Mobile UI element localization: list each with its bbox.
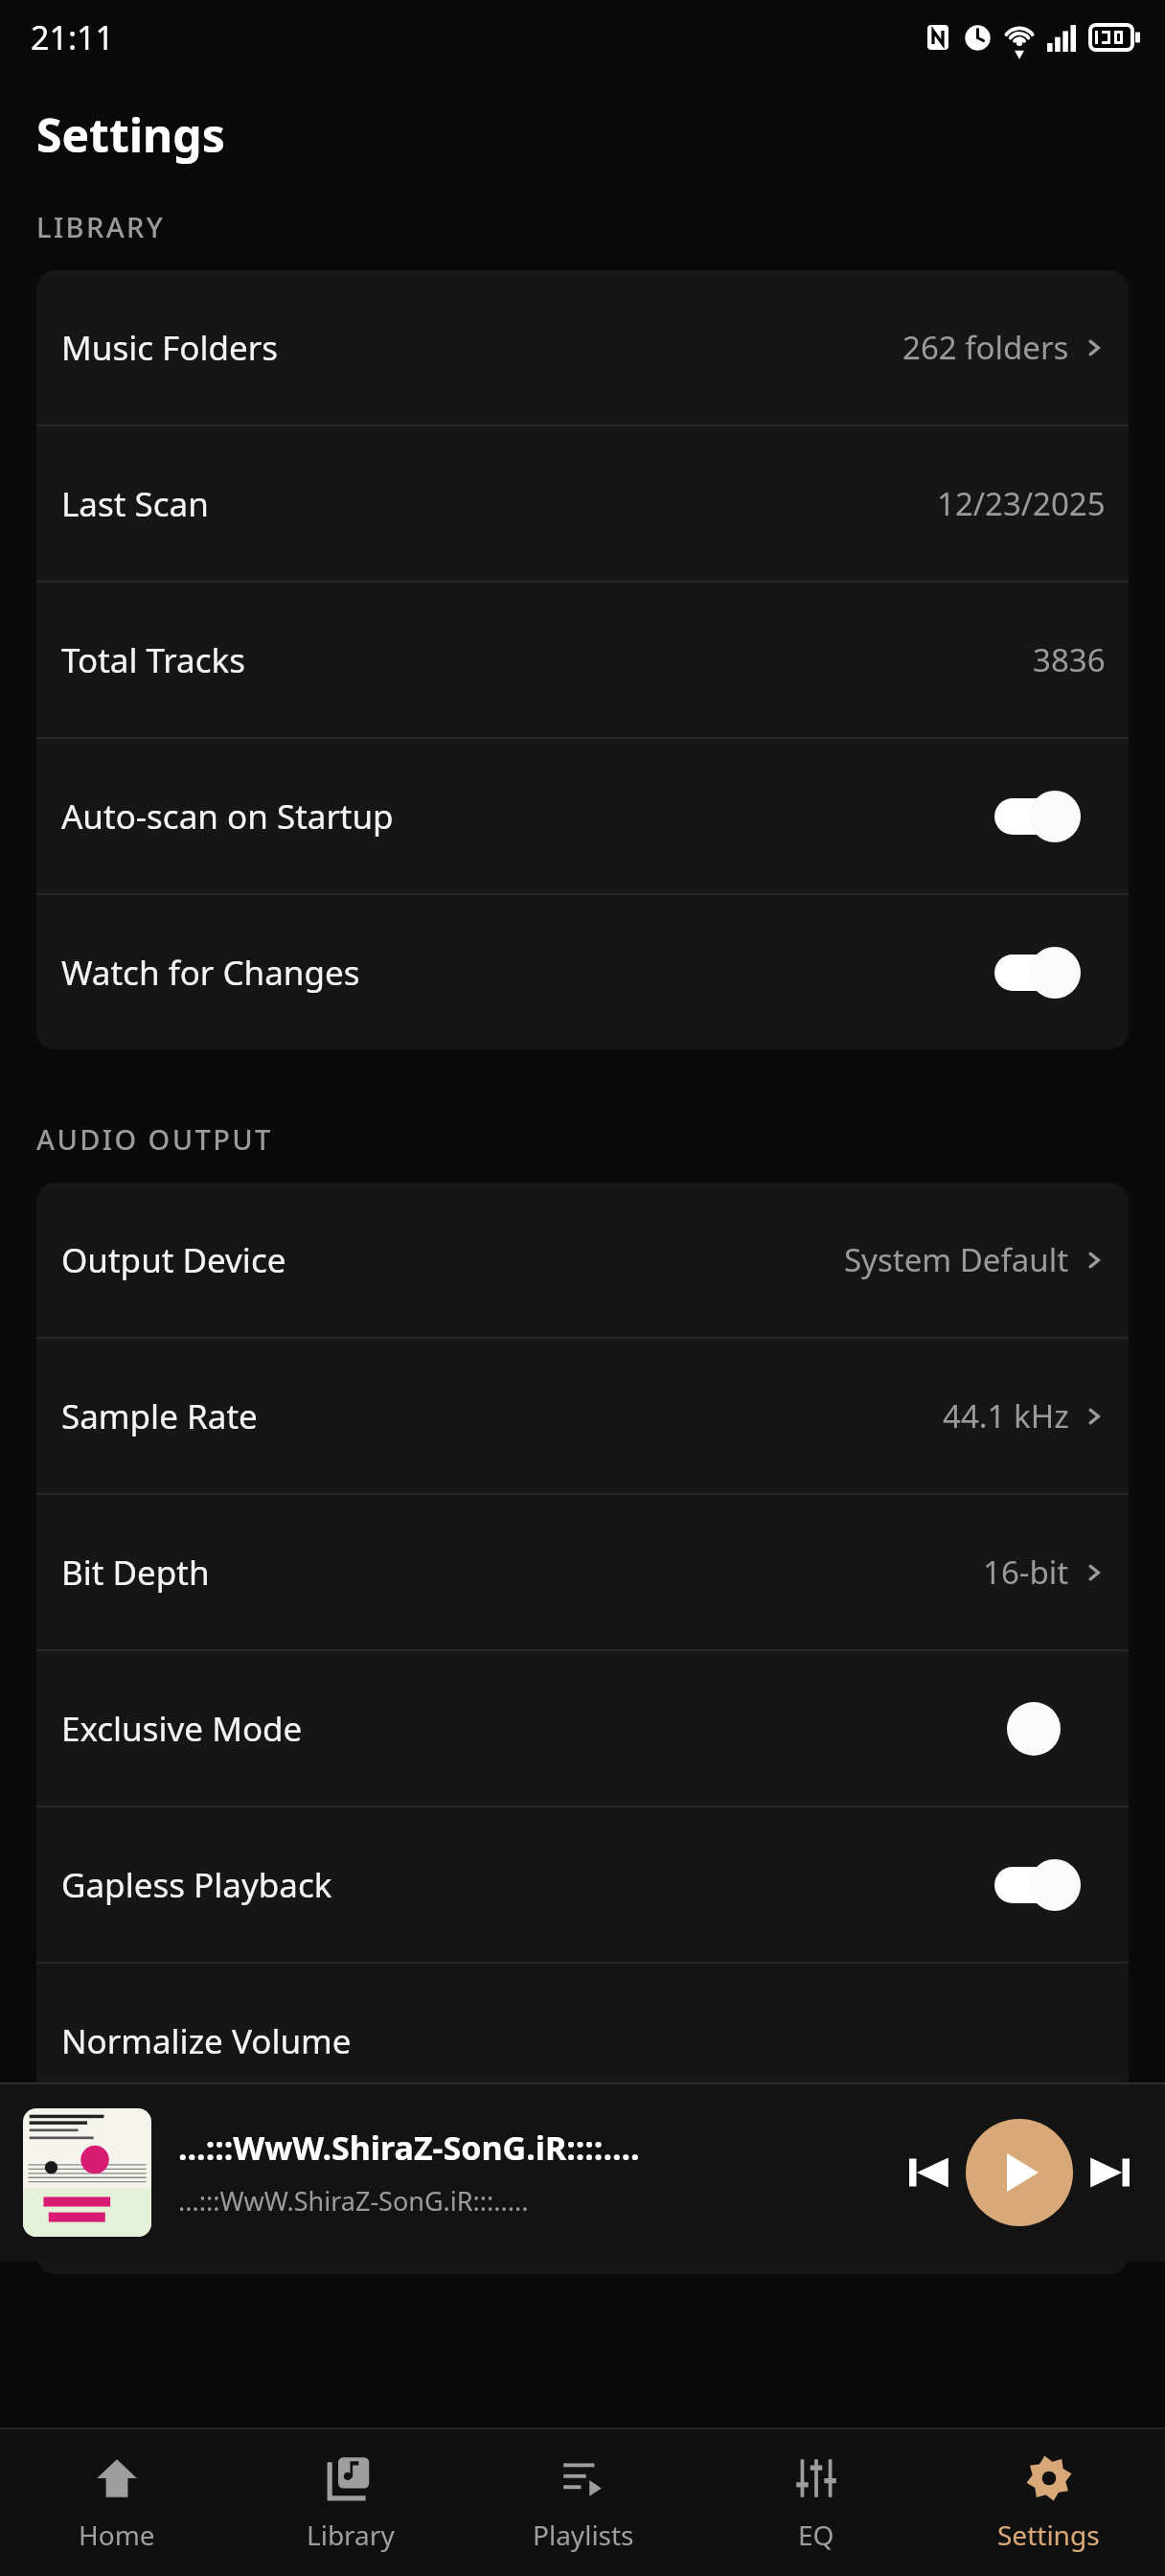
button[interactable]: ReplayGain	[36, 2120, 1129, 2274]
staticText: ...:::WwW.ShiraZ-SonG.iR::::....	[178, 2126, 640, 2170]
staticText: LIBRARY	[36, 208, 166, 245]
staticText: Bit Depth	[61, 1550, 983, 1596]
button[interactable]: Library	[234, 2429, 467, 2576]
button[interactable]: Home	[0, 2429, 234, 2576]
button[interactable]: Last Scan	[36, 426, 1129, 581]
staticText: 44.1 kHz	[943, 1394, 1069, 1437]
button[interactable]: Playlists	[467, 2429, 699, 2576]
staticText: AUDIO OUTPUT	[36, 1120, 273, 1158]
staticText: Playlists	[533, 2517, 634, 2553]
button[interactable]: Previous track	[893, 2136, 966, 2209]
button[interactable]: Auto-scan on Startup	[36, 739, 1129, 893]
staticText: Home	[79, 2517, 155, 2553]
button[interactable]: Bit Depth	[36, 1495, 1129, 1649]
staticText: EQ	[798, 2517, 834, 2553]
staticText: 3836	[1033, 638, 1106, 681]
button[interactable]: Next track	[1073, 2136, 1146, 2209]
staticText: Library	[307, 2517, 395, 2553]
staticText: Auto-scan on Startup	[61, 793, 994, 839]
staticText: Off	[1022, 2175, 1069, 2219]
button[interactable]: Play	[966, 2119, 1073, 2226]
staticText: Last Scan	[61, 481, 937, 527]
button[interactable]: Watch for Changes	[36, 895, 1129, 1049]
button[interactable]: Gapless Playback	[36, 1807, 1129, 1962]
button[interactable]: Settings	[932, 2429, 1165, 2576]
staticText: Music Folders	[61, 325, 902, 371]
staticText: 16-bit	[983, 1551, 1069, 1594]
staticText: Normalize Volume	[61, 2018, 1106, 2064]
staticText: 12/23/2025	[937, 482, 1106, 525]
staticText: 21:11	[31, 15, 114, 59]
button[interactable]: EQ	[699, 2429, 932, 2576]
button[interactable]: Exclusive Mode	[36, 1651, 1129, 1805]
staticText: ReplayGain	[61, 2174, 1022, 2220]
button[interactable]: Total Tracks	[36, 583, 1129, 737]
staticText: ...:::WwW.ShiraZ-SonG.iR:::.....	[178, 2183, 529, 2219]
staticText: Watch for Changes	[61, 950, 994, 996]
staticText: Sample Rate	[61, 1393, 943, 1439]
staticText: Gapless Playback	[61, 1862, 994, 1908]
staticText: 262 folders	[902, 326, 1069, 369]
button[interactable]: Music Folders	[36, 270, 1129, 425]
button[interactable]: Sample Rate	[36, 1339, 1129, 1493]
button[interactable]: Normalize Volume	[36, 1964, 1129, 2118]
button[interactable]: Output Device	[36, 1183, 1129, 1337]
staticText: System Default	[844, 1238, 1069, 1281]
staticText: Output Device	[61, 1237, 844, 1283]
staticText: Total Tracks	[61, 637, 1033, 683]
button[interactable]	[23, 2108, 151, 2237]
staticText: Settings	[997, 2517, 1100, 2553]
staticText: Settings	[36, 103, 225, 166]
staticText: Exclusive Mode	[61, 1706, 994, 1752]
